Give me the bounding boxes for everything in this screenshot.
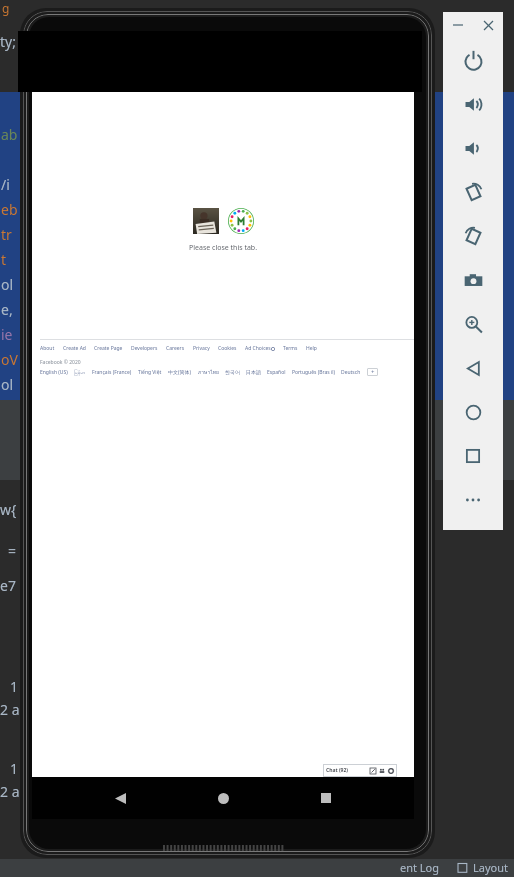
button[interactable]: Zoom <box>443 302 503 346</box>
staticText: tr <box>1 225 12 244</box>
button[interactable]: Developers <box>131 345 158 352</box>
button[interactable]: More <box>443 478 503 522</box>
button[interactable]: 日本語 <box>246 369 261 375</box>
button[interactable]: Minimize <box>449 16 467 34</box>
staticText: ol <box>1 375 14 394</box>
button[interactable]: Overview <box>443 434 503 478</box>
button[interactable]: Privacy <box>193 345 210 352</box>
staticText: g <box>2 0 10 16</box>
staticText: 1 <box>10 677 19 696</box>
button[interactable]: Back <box>443 346 503 390</box>
button[interactable]: Terms <box>283 345 298 352</box>
staticText: 한국어 <box>225 369 240 375</box>
staticText: e, <box>1 300 13 319</box>
staticText: Ad Choices <box>245 345 271 352</box>
button[interactable]: Deutsch <box>341 369 361 376</box>
button[interactable]: About <box>40 345 55 352</box>
button[interactable]: Rotate left <box>443 170 503 214</box>
staticText: ol <box>1 275 14 294</box>
button[interactable]: 한국어 <box>225 369 240 375</box>
button[interactable]: Français (France) <box>92 369 132 376</box>
button[interactable]: Tiếng Việt <box>138 369 162 376</box>
staticText: Create Ad <box>63 345 86 352</box>
button[interactable]: Create Ad <box>63 345 86 352</box>
staticText: oV <box>1 350 18 369</box>
staticText: Deutsch <box>341 369 361 376</box>
button[interactable]: Back <box>105 783 135 813</box>
button[interactable]: Create Page <box>94 345 123 352</box>
button[interactable]: Cookies <box>218 345 237 352</box>
button[interactable]: ภาษาไทย <box>198 368 219 376</box>
staticText: Chat (92) <box>326 767 349 774</box>
button[interactable]: Volume up <box>443 82 503 126</box>
staticText: Cookies <box>218 345 237 352</box>
button[interactable]: Power <box>443 38 503 82</box>
staticText: /i <box>1 175 10 194</box>
button[interactable]: Close <box>479 16 497 34</box>
staticText: 2 a <box>0 782 20 801</box>
staticText: Français (France) <box>92 369 132 376</box>
staticText: + <box>371 368 375 376</box>
staticText: ab <box>1 125 18 144</box>
button[interactable]: Rotate right <box>443 214 503 258</box>
staticText: 日本語 <box>246 369 261 375</box>
staticText: ent Log <box>400 860 440 875</box>
staticText: t <box>1 250 7 269</box>
button[interactable]: Home <box>208 783 238 813</box>
staticText: မြန်မာ <box>74 369 86 376</box>
staticText: Careers <box>166 345 185 352</box>
button[interactable]: Recent apps <box>311 783 341 813</box>
staticText: Create Page <box>94 345 123 352</box>
staticText: = <box>8 541 17 560</box>
staticText: ty; <box>0 32 16 51</box>
staticText: Layout <box>473 860 508 875</box>
staticText: English (US) <box>40 369 68 376</box>
staticText: Terms <box>283 345 298 352</box>
staticText: About <box>40 345 55 352</box>
button[interactable]: Volume down <box>443 126 503 170</box>
button[interactable]: မြန်မာ <box>74 369 86 376</box>
button[interactable]: Chat (92) <box>323 764 397 777</box>
button[interactable]: Español <box>267 369 286 376</box>
staticText: Tiếng Việt <box>138 369 162 376</box>
button[interactable]: More languages <box>367 368 378 376</box>
button[interactable]: Help <box>306 345 317 352</box>
button[interactable] <box>193 208 219 234</box>
staticText: Português (Bras il) <box>292 369 335 376</box>
staticText: Privacy <box>193 345 210 352</box>
button[interactable]: Take screenshot <box>443 258 503 302</box>
button[interactable]: Home <box>443 390 503 434</box>
staticText: Facebook © 2020 <box>40 359 81 366</box>
staticText: w{ <box>0 500 17 519</box>
button[interactable]: 中文(简体) <box>168 369 192 376</box>
staticText: 中文(简体) <box>168 369 192 376</box>
staticText: 1 <box>10 759 19 778</box>
staticText: Español <box>267 369 286 376</box>
staticText: 2 a <box>0 700 20 719</box>
button[interactable]: Page logo <box>228 208 254 234</box>
staticText: ie <box>1 325 13 344</box>
button[interactable]: Careers <box>166 345 185 352</box>
staticText: ภาษาไทย <box>198 368 219 376</box>
button[interactable]: English (US) <box>40 369 68 376</box>
staticText: eb <box>1 200 18 219</box>
button[interactable]: Português (Bras il) <box>292 369 335 376</box>
staticText: e7 <box>0 576 16 595</box>
button[interactable]: Ad Choices <box>245 345 271 352</box>
